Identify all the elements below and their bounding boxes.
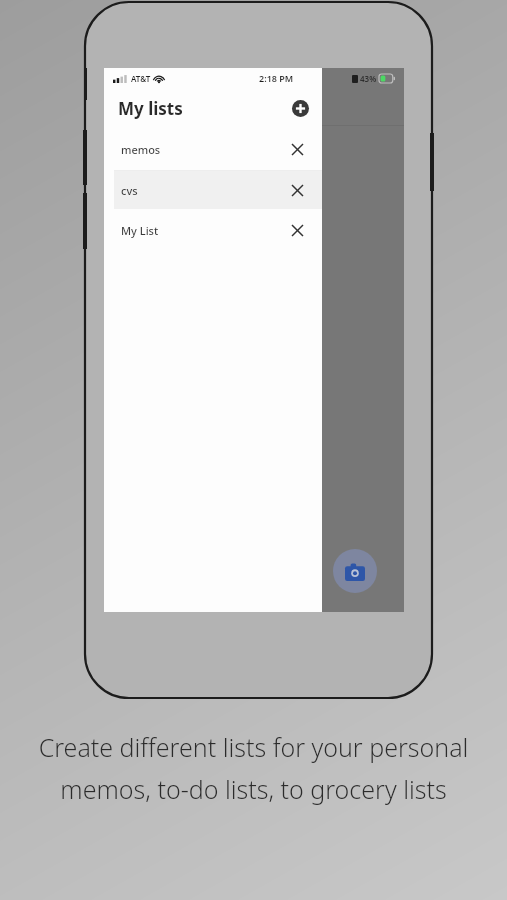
button[interactable]: Delete cvs xyxy=(286,179,308,201)
button[interactable]: Take photo xyxy=(333,549,377,593)
staticText: 43% xyxy=(360,73,377,84)
button[interactable]: Delete My List xyxy=(286,219,308,241)
button[interactable]: memos xyxy=(104,128,322,170)
button[interactable]: cvs xyxy=(114,171,322,209)
staticText: memos xyxy=(121,142,161,157)
staticText: My List xyxy=(121,223,159,238)
staticText: Create different lists for your personal… xyxy=(18,730,489,806)
button[interactable]: Add list xyxy=(287,95,313,121)
staticText: cvs xyxy=(121,183,138,198)
staticText: My lists xyxy=(118,97,183,120)
button[interactable]: Delete memos xyxy=(286,138,308,160)
button[interactable]: My List xyxy=(104,209,322,251)
staticText: 2:18 PM xyxy=(259,72,294,84)
staticText: AT&T xyxy=(131,73,151,84)
